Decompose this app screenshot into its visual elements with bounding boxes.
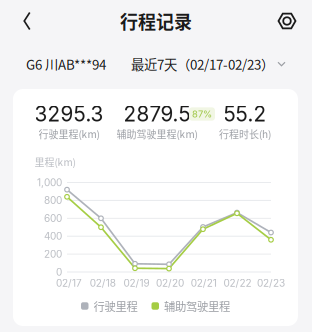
staticText: 行驶里程 [93, 298, 137, 314]
button[interactable]: Back [10, 6, 40, 36]
staticText: 里程(km) [34, 155, 75, 169]
staticText: 辅助驾驶里程 [164, 298, 230, 314]
staticText: 02/17 [56, 277, 82, 289]
staticText: 55.2 [223, 101, 266, 126]
staticText: 1,000 [37, 176, 62, 189]
staticText: 02/23 [257, 277, 285, 289]
staticText: 行程记录 [120, 8, 192, 34]
staticText: 0 [56, 266, 62, 278]
staticText: 87% [192, 108, 212, 120]
staticText: 600 [44, 212, 62, 224]
staticText: 800 [44, 194, 62, 206]
button[interactable]: Settings [272, 6, 302, 36]
staticText: 3295.3 [34, 101, 103, 126]
staticText: 最近7天（02/17-02/23） [131, 54, 274, 74]
staticText: G6 川AB***94 [26, 54, 106, 74]
button[interactable]: 最近7天（02/17-02/23） [131, 54, 287, 74]
staticText: 200 [44, 248, 62, 260]
staticText: 02/18 [90, 277, 116, 289]
staticText: 02/20 [156, 277, 184, 289]
staticText: 02/22 [223, 277, 251, 289]
staticText: 辅助驾驶里程(km) [116, 127, 197, 141]
staticText: 400 [44, 230, 62, 242]
staticText: 行驶里程(km) [38, 127, 99, 141]
staticText: 02/21 [191, 277, 217, 289]
button[interactable]: G6 川AB***94 [26, 54, 106, 74]
staticText: 02/19 [123, 277, 149, 289]
staticText: 行程时长(h) [219, 127, 271, 141]
staticText: 2879.5 [123, 101, 190, 126]
